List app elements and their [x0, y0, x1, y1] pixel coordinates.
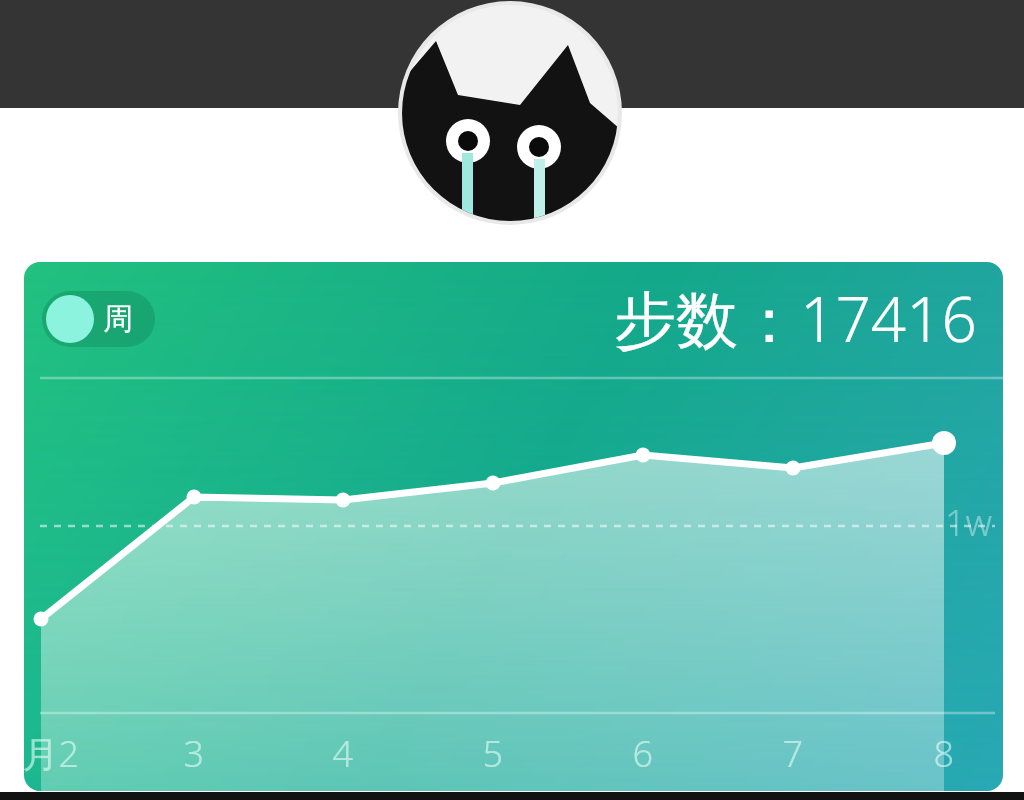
- button[interactable]: Steps chart card: [8, 87, 334, 263]
- button[interactable]: Week toggle: [14, 97, 51, 116]
